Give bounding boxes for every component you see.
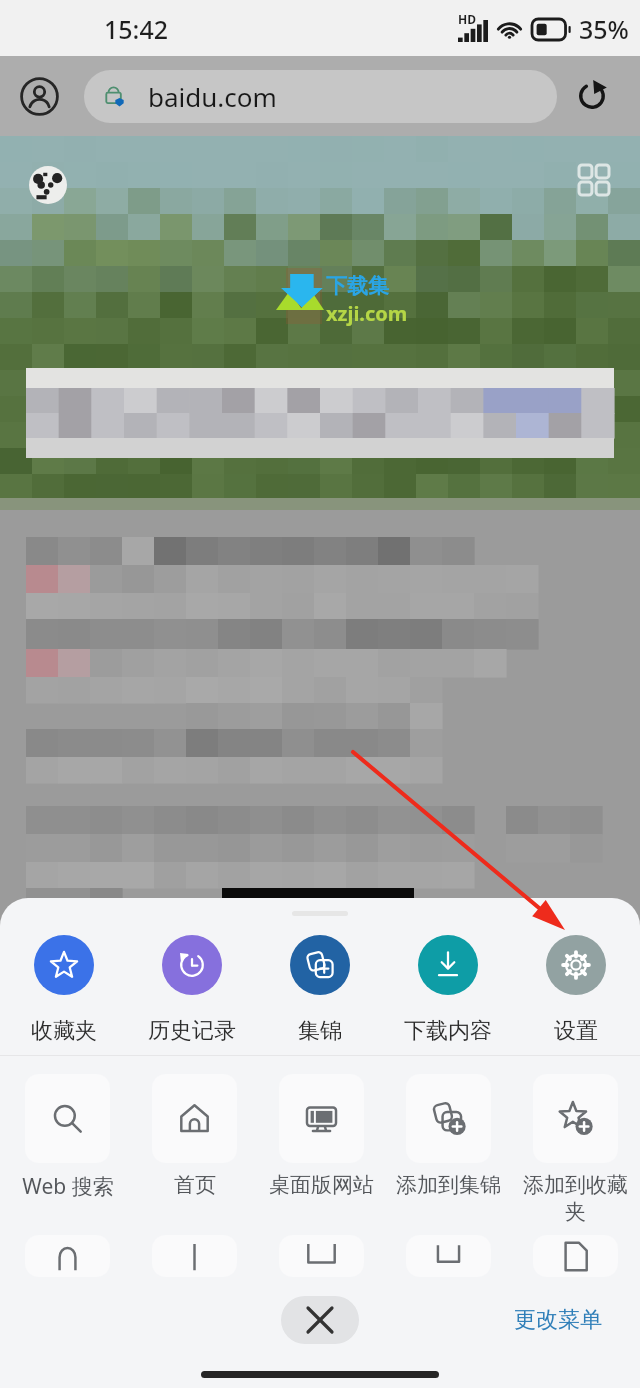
- button[interactable]: Refresh: [564, 68, 620, 124]
- staticText: 历史记录: [148, 1017, 236, 1045]
- staticText: 集锦: [298, 1017, 342, 1045]
- staticText: xzji.com: [326, 300, 408, 327]
- button[interactable]: Apps: [574, 160, 614, 200]
- button[interactable]: 桌面版网站: [262, 1074, 381, 1198]
- staticText: 设置: [554, 1017, 598, 1045]
- button[interactable]: 更改菜单: [476, 1296, 640, 1344]
- button[interactable]: 下载内容: [388, 935, 508, 1045]
- staticText: Web 搜索: [22, 1172, 114, 1201]
- staticText: HD: [458, 11, 476, 27]
- staticText: 下载内容: [404, 1017, 492, 1045]
- button[interactable]: 首页: [135, 1074, 254, 1198]
- button[interactable]: 历史记录: [132, 935, 252, 1045]
- button[interactable]: page: [533, 1235, 618, 1277]
- staticText: 更改菜单: [514, 1306, 602, 1334]
- staticText: 下载集: [326, 273, 389, 299]
- button[interactable]: 收藏夹: [4, 935, 124, 1045]
- button[interactable]: find: [25, 1235, 110, 1277]
- button[interactable]: 设置: [516, 935, 636, 1045]
- button[interactable]: bar: [152, 1235, 237, 1277]
- button[interactable]: win2: [406, 1235, 491, 1277]
- button[interactable]: Profile: [9, 66, 69, 126]
- staticText: baidu.com: [148, 79, 277, 114]
- staticText: 35%: [579, 12, 629, 46]
- button[interactable]: Web 搜索: [8, 1074, 127, 1201]
- staticText: 首页: [174, 1172, 216, 1198]
- button[interactable]: win: [279, 1235, 364, 1277]
- staticText: 15:42: [104, 12, 169, 46]
- button[interactable]: baidu.com: [84, 70, 557, 123]
- staticText: 添加到收藏夹: [516, 1172, 635, 1225]
- staticText: 收藏夹: [31, 1017, 97, 1045]
- button[interactable]: Close: [281, 1296, 359, 1344]
- staticText: 桌面版网站: [269, 1172, 374, 1198]
- button[interactable]: 添加到收藏夹: [516, 1074, 635, 1225]
- staticText: 添加到集锦: [396, 1172, 501, 1198]
- button[interactable]: 添加到集锦: [389, 1074, 508, 1198]
- button[interactable]: 集锦: [260, 935, 380, 1045]
